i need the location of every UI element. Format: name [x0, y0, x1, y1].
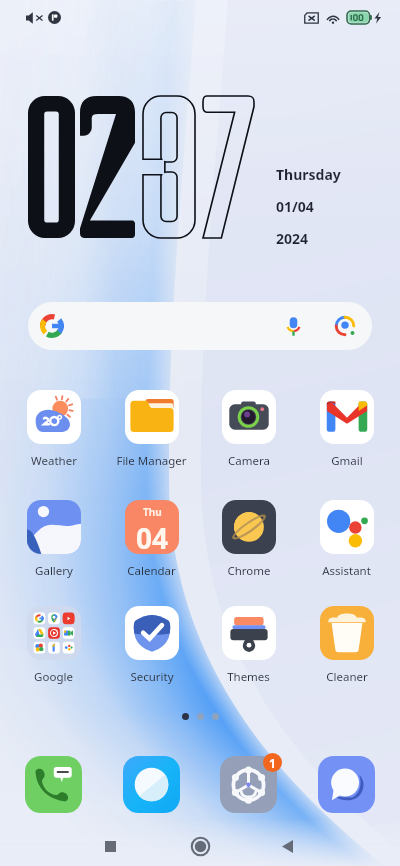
- staticText: 04: [136, 519, 169, 554]
- staticText: Thu: [143, 505, 162, 519]
- staticText: Google: [34, 669, 73, 685]
- button[interactable]: Browser: [109, 753, 194, 815]
- button[interactable]: Weather: [13, 390, 94, 469]
- staticText: Gmail: [331, 453, 363, 469]
- button[interactable]: Voice search: [276, 309, 310, 343]
- button[interactable]: Google Lens: [328, 309, 362, 343]
- button[interactable]: Phone: [11, 753, 96, 815]
- button[interactable]: Google Lens: [28, 302, 372, 350]
- button[interactable]: Back: [265, 826, 309, 866]
- staticText: 1: [269, 755, 276, 771]
- staticText: Themes: [227, 669, 270, 685]
- staticText: Thursday: [276, 165, 341, 184]
- staticText: 2024: [276, 229, 309, 248]
- staticText: Gallery: [35, 563, 73, 579]
- button[interactable]: Security: [111, 606, 192, 685]
- button[interactable]: Gmail: [306, 390, 387, 469]
- button[interactable]: Thu: [111, 500, 192, 579]
- button[interactable]: Cleaner: [306, 606, 387, 685]
- button[interactable]: Home: [178, 826, 222, 866]
- button[interactable]: Settings: [206, 753, 291, 815]
- button[interactable]: Chrome: [208, 500, 289, 579]
- staticText: Camera: [228, 453, 270, 469]
- staticText: Weather: [31, 453, 77, 469]
- button[interactable]: File Manager: [111, 390, 192, 469]
- staticText: 01/04: [276, 197, 314, 216]
- button[interactable]: Google: [13, 606, 94, 685]
- staticText: Assistant: [322, 563, 371, 579]
- staticText: Security: [130, 669, 174, 685]
- staticText: Chrome: [227, 563, 271, 579]
- button[interactable]: Themes: [208, 606, 289, 685]
- button[interactable]: Gallery: [13, 500, 94, 579]
- button[interactable]: Recents: [88, 826, 132, 866]
- staticText: Cleaner: [326, 669, 368, 685]
- button[interactable]: Messages: [304, 753, 389, 815]
- button[interactable]: Assistant: [306, 500, 387, 579]
- staticText: Calendar: [127, 563, 176, 579]
- button[interactable]: Camera: [208, 390, 289, 469]
- staticText: File Manager: [116, 453, 187, 469]
